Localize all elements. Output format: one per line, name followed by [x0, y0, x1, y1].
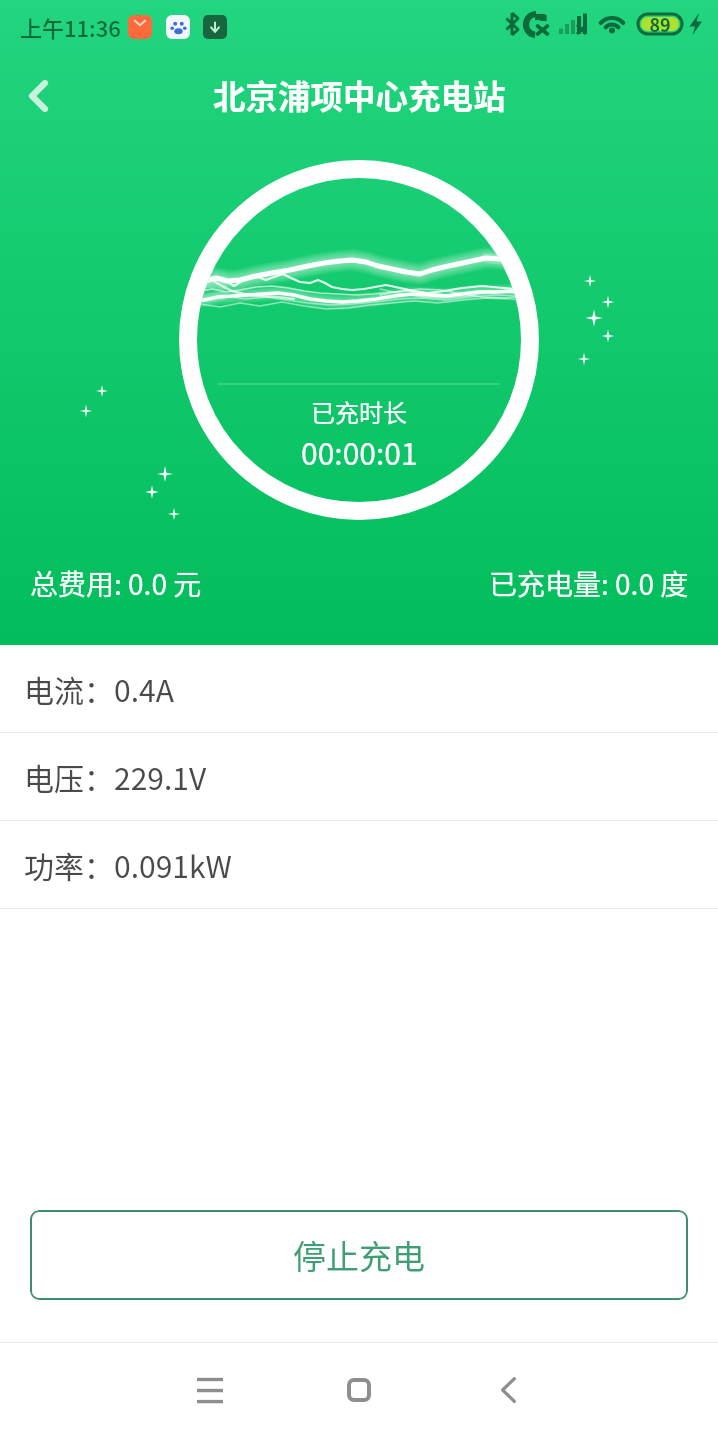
staticText: 功率：0.091kW [24, 843, 232, 886]
button[interactable]: Back [0, 58, 76, 134]
staticText: 已充电量: 0.0 度 [489, 563, 689, 604]
staticText: 上午11:36 [20, 11, 121, 43]
staticText: 总费用: 0.0 元 [30, 563, 202, 604]
button[interactable]: Recents [150, 1342, 270, 1438]
staticText: 停止充电 [293, 1231, 425, 1279]
staticText: 电压：229.1V [24, 755, 207, 798]
button[interactable]: 电流：0.4A [0, 645, 718, 732]
staticText: 北京浦项中心充电站 [213, 71, 506, 118]
staticText: 已充时长 [311, 394, 407, 429]
button[interactable]: 电压：229.1V [0, 733, 718, 820]
button[interactable]: 停止充电 [30, 1210, 688, 1300]
button[interactable]: Back [448, 1342, 568, 1438]
staticText: 89 [649, 11, 671, 37]
button[interactable]: Home [299, 1342, 419, 1438]
staticText: 00:00:01 [301, 430, 418, 473]
button[interactable]: 功率：0.091kW [0, 821, 718, 908]
staticText: 电流：0.4A [24, 667, 174, 710]
